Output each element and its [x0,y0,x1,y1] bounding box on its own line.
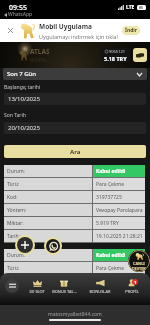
staticText: Başlangıç tarihi [4,84,41,91]
staticText: Para Çekme [96,181,125,188]
staticText: Ara [70,148,81,156]
staticText: CANLI [133,261,145,266]
staticText: 319737725 [96,194,122,201]
button[interactable]: Yöntem: [4,204,145,216]
staticText: 1 [134,280,137,285]
button[interactable]: Menü [0,273,24,299]
button[interactable]: Canlı Destek [128,250,150,272]
staticText: Kabul edildi [96,168,126,175]
staticText: BONUS TAL... [52,289,77,294]
staticText: Mobil Uygulama [39,22,92,31]
button[interactable]: WhatsApp [44,237,62,255]
staticText: Durum: [7,252,25,259]
button[interactable]: Türü: [4,262,145,274]
staticText: ROYAL [30,56,47,63]
button[interactable]: İndir [122,26,140,35]
button[interactable]: Durum: [4,249,145,261]
staticText: Kabul edildi [96,252,126,259]
staticText: LTE [126,4,135,11]
staticText: 85 [139,5,144,10]
staticText: BONUSLAR [89,289,111,294]
staticText: Miktar: [7,220,24,227]
button[interactable]: Tarih: [4,230,145,242]
staticText: Son 7 Gün [7,70,36,78]
staticText: Türü: [7,265,20,272]
staticText: ATLAS [30,47,50,56]
staticText: PROFİL [125,289,139,294]
button[interactable]: 13/10/2025 [4,93,146,105]
button[interactable]: BONUS TAL... [50,273,78,299]
button[interactable]: Miktar: [4,217,145,229]
staticText: 5.18 TRY [104,55,127,62]
button[interactable]: Para yatır [133,48,147,62]
button[interactable]: Kapat [0,19,20,42]
staticText: matosmyalbet844.com [48,311,102,318]
button[interactable]: Ara [4,145,146,158]
staticText: 13/10/2025 [8,95,40,103]
button[interactable]: 9065121 [101,48,130,62]
button[interactable]: Ekle [15,235,35,255]
staticText: Yöntem: [7,207,27,214]
staticText: 09:55 [9,3,27,13]
staticText: Vevopay Parolapara [96,207,143,214]
staticText: Para Çekme [96,265,125,272]
button[interactable]: Durum: [4,165,145,177]
staticText: İndir [125,27,138,34]
staticText: Türü: [7,181,20,188]
staticText: Kod: [7,194,18,201]
staticText: 20/10/2025 [8,124,40,132]
staticText: Durum: [7,168,25,175]
staticText: WhatsApp [8,11,33,18]
staticText: 9065121 [109,49,126,54]
staticText: Uygulamayı indirmek için tıkla! [39,33,119,40]
button[interactable]: Kod: [4,191,145,203]
staticText: 5.919 TRY [96,220,119,227]
staticText: 3D SLOT [29,289,45,294]
button[interactable]: Türü: [4,178,145,190]
button[interactable]: 3D SLOT [24,273,50,299]
button[interactable]: Son 7 Gün [3,68,147,80]
button[interactable]: 1 [114,273,150,299]
button[interactable]: 20/10/2025 [4,122,146,134]
staticText: Son Tarih [4,112,26,119]
staticText: 19.10.2025 21:28:21 [96,233,143,240]
staticText: DESTEK [132,266,146,271]
staticText: Tarih: [7,233,20,240]
button[interactable]: BONUSLAR [82,273,118,299]
